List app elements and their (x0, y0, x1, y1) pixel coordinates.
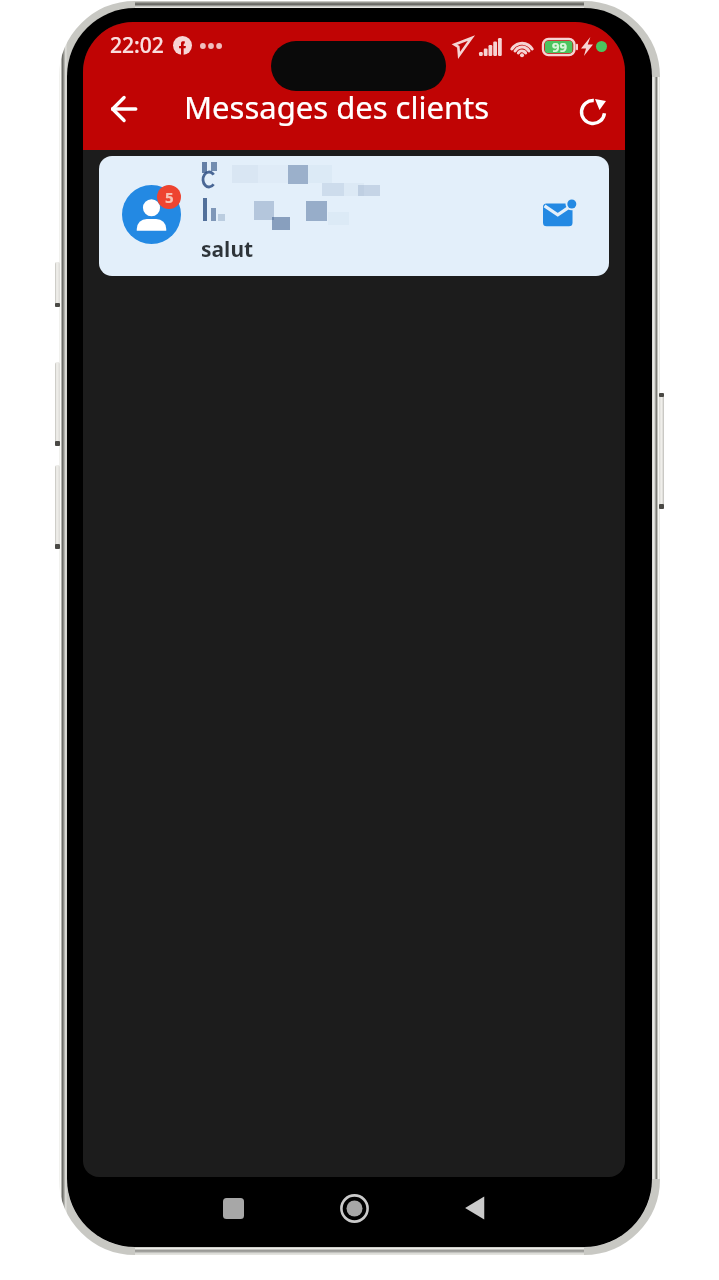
button[interactable]: Refresh (567, 86, 619, 138)
staticText: 22:02 (110, 31, 164, 60)
button[interactable]: Back (453, 1186, 497, 1230)
button[interactable]: Back (98, 83, 150, 135)
staticText: 99 (552, 38, 567, 56)
button[interactable]: Unread message (543, 197, 579, 229)
staticText: salut (201, 235, 254, 264)
staticText: 5 (165, 187, 174, 207)
button[interactable]: Recent apps (211, 1186, 255, 1230)
button[interactable]: Home (332, 1186, 376, 1230)
staticText: Messages des clients (184, 86, 490, 128)
button[interactable]: 5 (99, 156, 609, 276)
